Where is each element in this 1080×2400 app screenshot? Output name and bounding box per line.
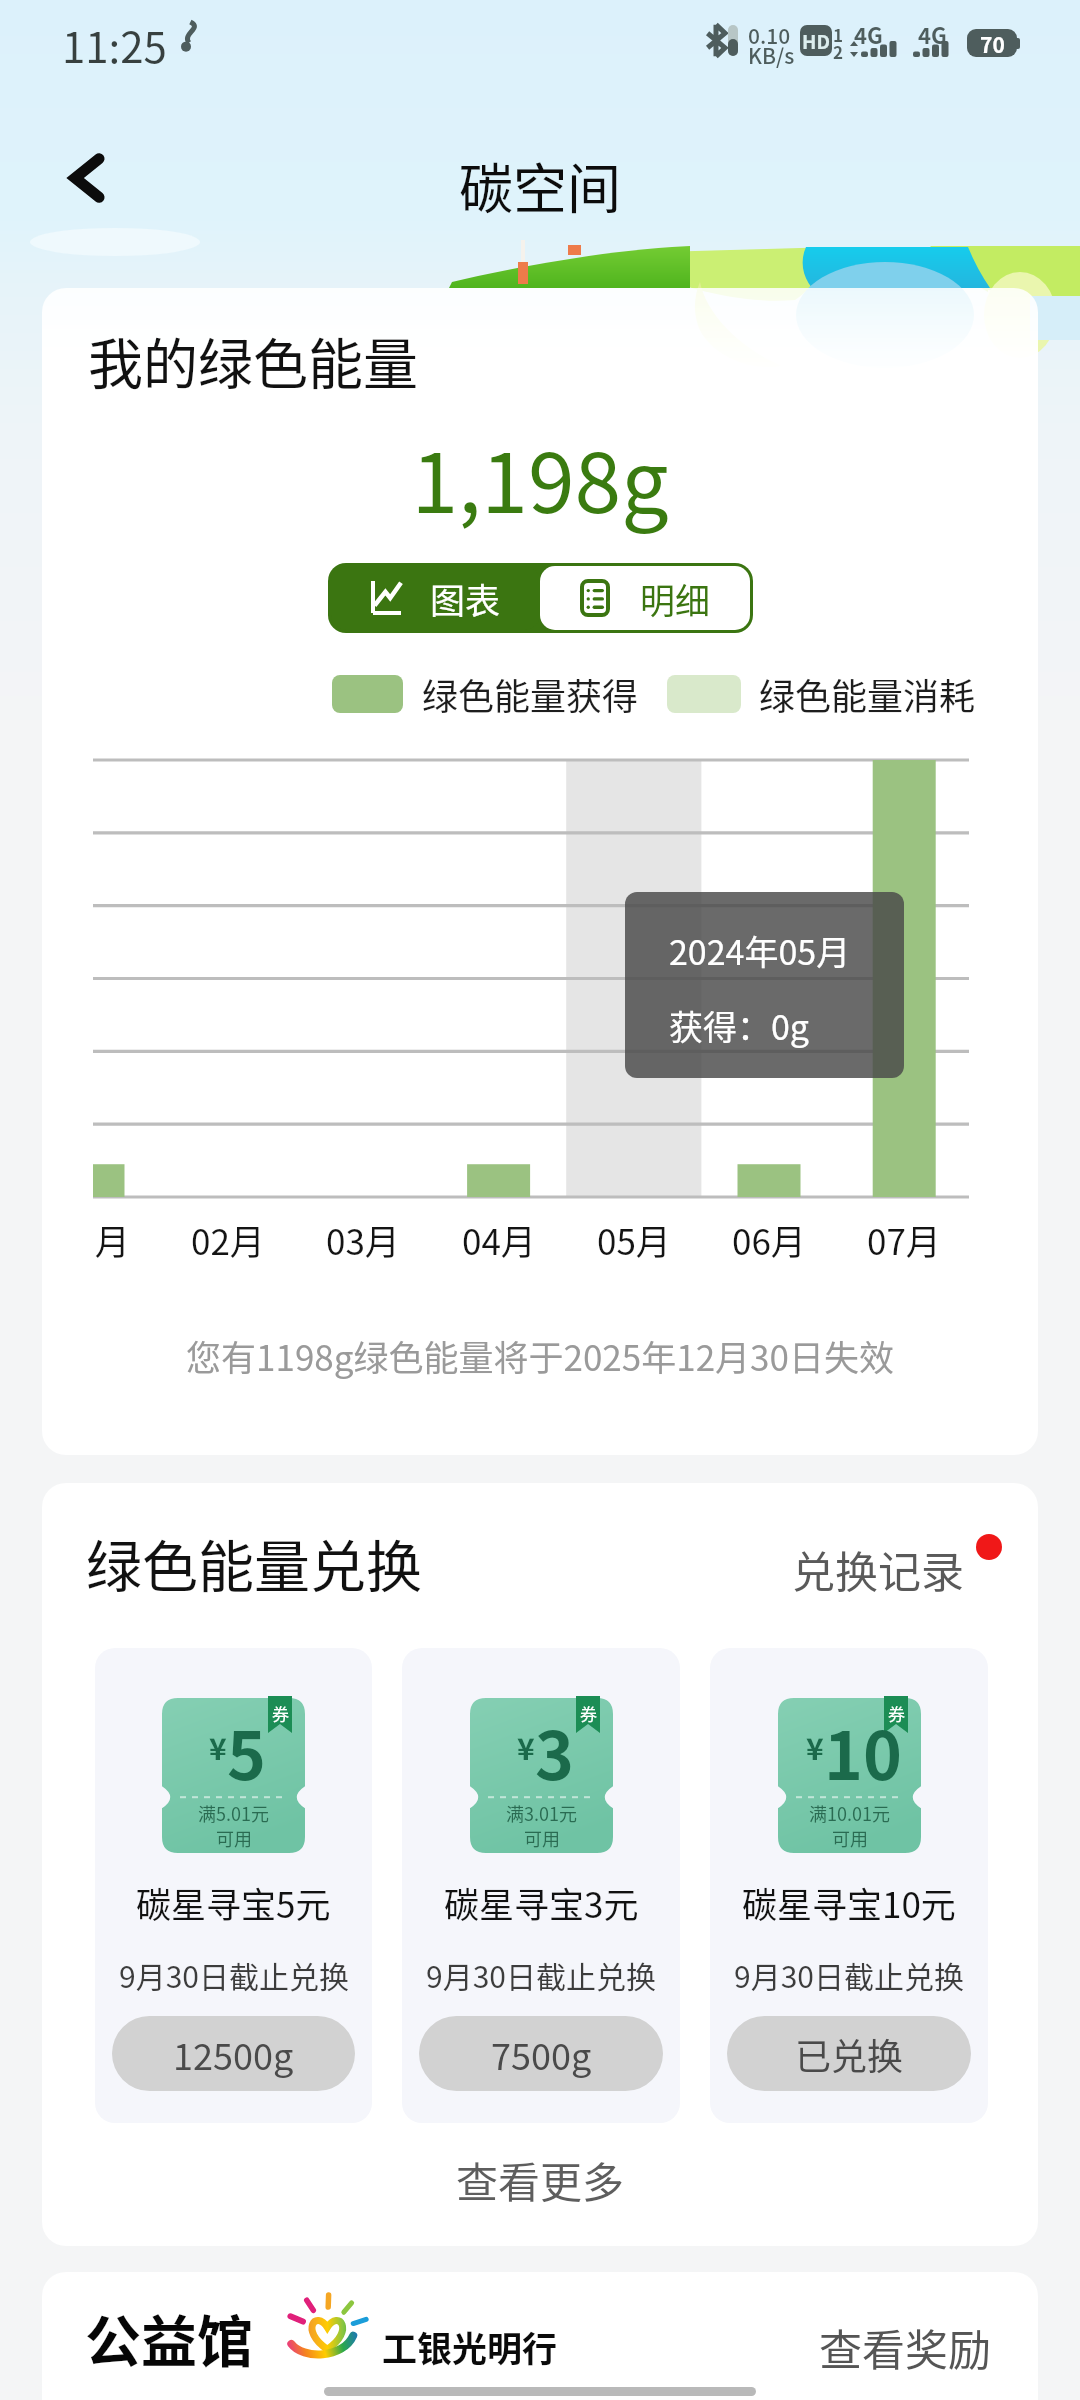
button[interactable]: ¥ <box>402 1648 680 2123</box>
button[interactable]: Back <box>40 130 136 226</box>
button[interactable]: 明细 <box>540 566 750 630</box>
staticText: 明细 <box>640 573 711 624</box>
button[interactable]: 已兑换 <box>727 2016 971 2091</box>
staticText: 我的绿色能量 <box>88 320 419 400</box>
staticText: 已兑换 <box>795 2028 904 2080</box>
staticText: ¥ <box>517 1725 535 1768</box>
staticText: 券 <box>580 1701 597 1726</box>
staticText: 满3.01元 <box>506 1800 577 1826</box>
staticText: 满10.01元 <box>809 1800 890 1826</box>
staticText: 券 <box>888 1701 905 1726</box>
staticText: 05月 <box>597 1214 671 1265</box>
staticText: 满5.01元 <box>198 1800 269 1826</box>
staticText: 查看更多 <box>456 2149 625 2210</box>
staticText: 4G <box>854 18 883 50</box>
button[interactable]: 图表 <box>331 566 540 630</box>
staticText: 0.10 KB/s <box>748 20 795 70</box>
staticText: 9月30日截止兑换 <box>426 1953 656 1996</box>
staticText: 1 2 <box>833 22 844 64</box>
button[interactable]: 7500g <box>419 2016 663 2091</box>
staticText: 碳星寻宝5元 <box>136 1877 331 1928</box>
button[interactable]: 查看更多 <box>42 2144 1038 2214</box>
button[interactable]: ¥ <box>95 1648 372 2123</box>
staticText: 12500g <box>173 2028 294 2080</box>
button[interactable]: 查看奖励 <box>819 2316 991 2378</box>
staticText: 可用 <box>216 1825 252 1851</box>
staticText: 11:25 <box>62 14 167 75</box>
staticText: 06月 <box>732 1214 806 1265</box>
button[interactable]: 兑换记录 <box>792 1538 990 1600</box>
staticText: 可用 <box>524 1825 560 1851</box>
staticText: 5 <box>227 1703 266 1799</box>
staticText: 9月30日截止兑换 <box>119 1953 349 1996</box>
staticText: 可用 <box>832 1825 868 1851</box>
staticText: 图表 <box>430 573 501 624</box>
staticText: ¥ <box>806 1725 824 1768</box>
staticText: 绿色能量兑换 <box>86 1522 422 1603</box>
staticText: 02月 <box>191 1214 265 1265</box>
staticText: 01月 <box>93 1214 130 1265</box>
staticText: 07月 <box>867 1214 941 1265</box>
staticText: 碳星寻宝10元 <box>742 1877 956 1928</box>
staticText: 兑换记录 <box>792 1538 964 1600</box>
staticText: 公益馆 <box>85 2297 253 2378</box>
staticText: ¥ <box>209 1725 227 1768</box>
staticText: 03月 <box>326 1214 400 1265</box>
staticText: 9月30日截止兑换 <box>734 1953 964 1996</box>
staticText: 3 <box>535 1703 574 1799</box>
staticText: HD <box>802 27 830 55</box>
staticText: 4G <box>918 18 947 50</box>
staticText: 70 <box>980 29 1005 57</box>
staticText: 1,198g <box>42 416 1038 538</box>
button[interactable]: 12500g <box>112 2016 355 2091</box>
staticText: 2024年05月 <box>669 926 851 975</box>
staticText: 获得：0g <box>669 1001 810 1050</box>
staticText: 10 <box>824 1703 902 1799</box>
staticText: 绿色能量获得 <box>422 668 639 720</box>
staticText: 碳星寻宝3元 <box>444 1877 639 1928</box>
staticText: 04月 <box>462 1214 536 1265</box>
staticText: 7500g <box>491 2028 592 2080</box>
button[interactable]: ¥ <box>710 1648 988 2123</box>
staticText: 工银光明行 <box>382 2321 558 2372</box>
staticText: 券 <box>272 1701 289 1726</box>
staticText: 绿色能量消耗 <box>759 668 976 720</box>
staticText: 您有1198g绿色能量将于2025年12月30日失效 <box>42 1330 1038 1381</box>
staticText: 碳空间 <box>459 146 621 224</box>
